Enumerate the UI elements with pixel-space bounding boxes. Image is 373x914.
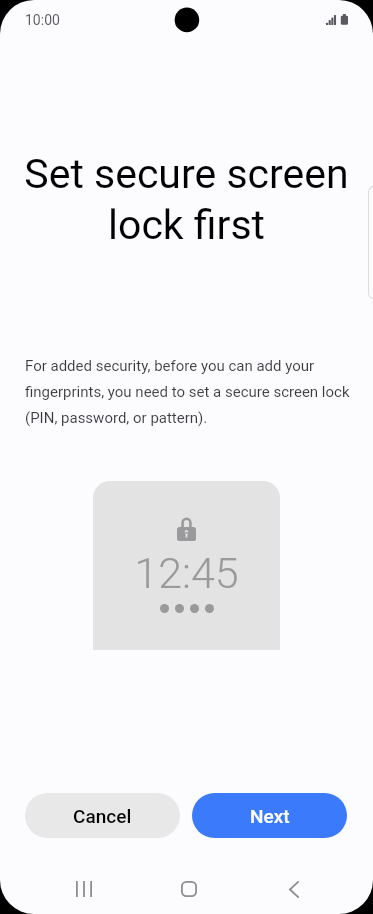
button[interactable]: Home — [157, 865, 221, 913]
button[interactable]: Recent apps — [52, 865, 116, 913]
staticText: 10:00 — [25, 12, 60, 28]
staticText: Next — [250, 805, 290, 827]
button[interactable]: Back — [262, 865, 326, 913]
staticText: Set secure screen lock first — [13, 150, 360, 249]
staticText: For added security, before you can add y… — [25, 357, 355, 426]
staticText: Cancel — [73, 805, 132, 827]
button[interactable]: Next — [192, 793, 347, 838]
staticText: 12:45 — [93, 548, 280, 598]
button[interactable]: Cancel — [25, 793, 180, 838]
